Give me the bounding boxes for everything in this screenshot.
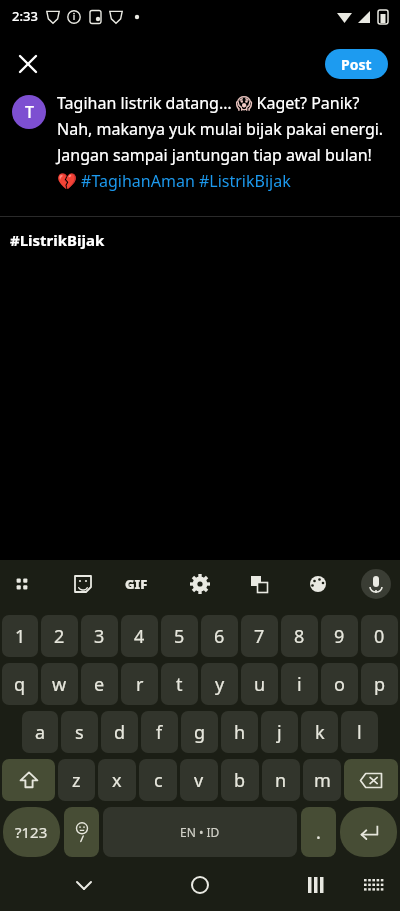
staticText: w (52, 672, 67, 697)
button[interactable]: y (201, 663, 238, 705)
button[interactable]: 3 (81, 615, 118, 657)
staticText: 3 (94, 624, 105, 649)
button[interactable]: r (121, 663, 158, 705)
staticText: p (374, 672, 386, 697)
button[interactable]: p (361, 663, 398, 705)
button[interactable]: 7 (241, 615, 278, 657)
button[interactable]: GIF (115, 560, 172, 608)
button[interactable]: 8 (281, 615, 318, 657)
staticText: 2:33 (12, 7, 38, 25)
staticText: g (194, 720, 206, 745)
button[interactable]: u (241, 663, 278, 705)
button[interactable]: w (41, 663, 78, 705)
staticText: m (314, 768, 331, 793)
staticText: Post (341, 55, 372, 74)
staticText: h (234, 720, 246, 745)
button[interactable]: 1 (2, 615, 38, 657)
staticText: n (275, 768, 287, 793)
button[interactable]: g (181, 711, 218, 753)
staticText: q (14, 672, 26, 697)
staticText: i (297, 672, 302, 697)
staticText: c (154, 768, 163, 793)
button[interactable]: h (221, 711, 258, 753)
button[interactable]: Theme (286, 560, 343, 608)
staticText: 2 (54, 624, 65, 649)
button[interactable]: 5 (161, 615, 198, 657)
button[interactable]: x (98, 759, 136, 801)
staticText: 9 (334, 624, 345, 649)
staticText: r (136, 672, 144, 697)
staticText: a (35, 720, 46, 745)
button[interactable]: Shift (2, 759, 55, 801)
staticText: l (357, 720, 362, 745)
staticText: v (194, 768, 204, 793)
button[interactable]: c (139, 759, 177, 801)
staticText: #ListrikBijak (10, 230, 105, 250)
staticText: 6 (214, 624, 225, 649)
staticText: T (25, 101, 34, 123)
button[interactable]: z (58, 759, 95, 801)
button[interactable]: o (321, 663, 358, 705)
staticText: s (75, 720, 84, 745)
button[interactable]: l (341, 711, 378, 753)
staticText: b (234, 768, 246, 793)
staticText: 5 (174, 624, 185, 649)
button[interactable]: Voice input (343, 560, 400, 608)
button[interactable]: s (61, 711, 98, 753)
staticText: 7 (254, 624, 265, 649)
button[interactable]: #ListrikBijak (0, 217, 400, 263)
button[interactable]: m (303, 759, 341, 801)
button[interactable]: t (161, 663, 198, 705)
staticText: f (156, 720, 163, 745)
staticText: j (277, 720, 282, 745)
button[interactable]: v (180, 759, 218, 801)
staticText: EN • ID (180, 824, 220, 840)
button[interactable]: . (301, 807, 336, 857)
button[interactable]: Settings (172, 560, 229, 608)
button[interactable]: f (141, 711, 178, 753)
staticText: z (72, 768, 81, 793)
button[interactable]: Post (325, 49, 388, 79)
button[interactable]: k (301, 711, 338, 753)
staticText: . (316, 820, 321, 845)
button[interactable]: Switch keyboard (300, 863, 400, 911)
button[interactable]: 4 (121, 615, 158, 657)
button[interactable]: 0 (361, 615, 398, 657)
button[interactable]: a (22, 711, 58, 753)
button[interactable]: 9 (321, 615, 358, 657)
button[interactable]: 2 (41, 615, 78, 657)
staticText: 8 (294, 624, 305, 649)
button[interactable]: i (281, 663, 318, 705)
staticText: k (315, 720, 325, 745)
staticText: y (215, 672, 225, 697)
staticText: x (112, 768, 122, 793)
staticText: t (176, 672, 183, 697)
button[interactable]: Enter (340, 807, 397, 857)
button[interactable]: j (261, 711, 298, 753)
button[interactable]: Recent apps (200, 863, 300, 911)
staticText: u (254, 672, 266, 697)
button[interactable]: Stickers (58, 560, 115, 608)
button[interactable]: d (101, 711, 138, 753)
button[interactable]: n (262, 759, 300, 801)
staticText: d (114, 720, 126, 745)
button[interactable]: EN • ID (103, 807, 297, 857)
button[interactable]: Hide keyboard (0, 863, 100, 911)
staticText: GIF (125, 575, 148, 593)
button[interactable]: Backspace (344, 759, 398, 801)
button[interactable]: ?123 (3, 807, 60, 857)
button[interactable]: e (81, 663, 118, 705)
button[interactable]: T (12, 95, 46, 129)
button[interactable]: q (2, 663, 38, 705)
staticText: 1 (15, 624, 26, 649)
button[interactable]: Emoji (64, 807, 99, 857)
button[interactable]: Close (10, 46, 46, 82)
button[interactable]: Grid (0, 560, 58, 608)
staticText: 0 (374, 624, 385, 649)
staticText: Tagihan listrik datang… 😱 Kaget? Panik? … (57, 92, 394, 192)
button[interactable]: 6 (201, 615, 238, 657)
button[interactable]: Home (100, 863, 200, 911)
staticText: e (94, 672, 105, 697)
button[interactable]: Translate (229, 560, 286, 608)
button[interactable]: b (221, 759, 259, 801)
